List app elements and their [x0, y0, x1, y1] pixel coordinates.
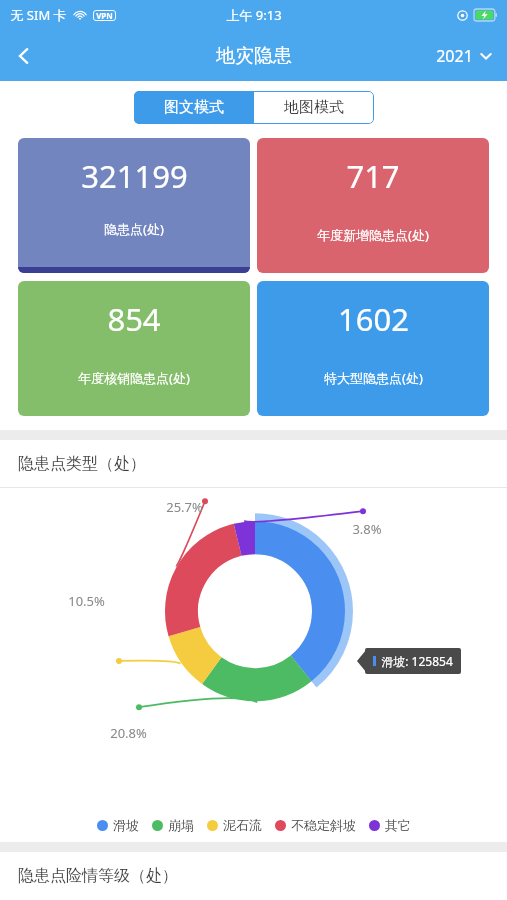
staticText: 1602: [338, 298, 409, 340]
staticText: 年度核销隐患点(处): [78, 369, 190, 387]
button[interactable]: 滑坡: [97, 817, 139, 833]
staticText: 隐患点类型（处）: [18, 454, 146, 474]
staticText: 无 SIM 卡: [10, 6, 67, 24]
staticText: 上午 9:13: [226, 6, 282, 24]
staticText: 泥石流: [223, 817, 262, 833]
staticText: 321199: [81, 155, 188, 197]
button[interactable]: 854: [18, 281, 250, 416]
staticText: 20.8%: [110, 724, 147, 742]
button[interactable]: 泥石流: [207, 817, 262, 833]
staticText: 特大型隐患点(处): [324, 369, 423, 387]
button[interactable]: 图文模式: [134, 91, 254, 124]
button[interactable]: 321199: [18, 138, 250, 273]
button[interactable]: 2021: [436, 45, 493, 67]
staticText: 滑坡: 125854: [381, 653, 453, 669]
staticText: 25.7%: [166, 498, 203, 516]
staticText: 年度新增隐患点(处): [317, 226, 429, 244]
staticText: 不稳定斜坡: [291, 817, 356, 833]
staticText: 地图模式: [284, 98, 344, 117]
staticText: 2021: [436, 45, 473, 67]
staticText: 隐患点险情等级（处）: [18, 866, 178, 886]
staticText: 854: [107, 298, 161, 340]
staticText: 10.5%: [68, 592, 105, 610]
button[interactable]: 崩塌: [152, 817, 194, 833]
staticText: 717: [346, 155, 400, 197]
staticText: 图文模式: [164, 98, 224, 117]
staticText: 滑坡: [113, 817, 139, 833]
staticText: 其它: [385, 817, 411, 833]
staticText: 3.8%: [352, 520, 382, 538]
staticText: 隐患点(处): [104, 220, 164, 238]
button[interactable]: 其它: [369, 817, 411, 833]
staticText: 地灾隐患: [216, 44, 292, 68]
button[interactable]: 地图模式: [254, 91, 374, 124]
button[interactable]: Back: [0, 32, 48, 80]
button[interactable]: 不稳定斜坡: [275, 817, 356, 833]
button[interactable]: 717: [257, 138, 489, 273]
staticText: 崩塌: [168, 817, 194, 833]
button[interactable]: 1602: [257, 281, 489, 416]
staticText: VPN: [96, 10, 113, 21]
